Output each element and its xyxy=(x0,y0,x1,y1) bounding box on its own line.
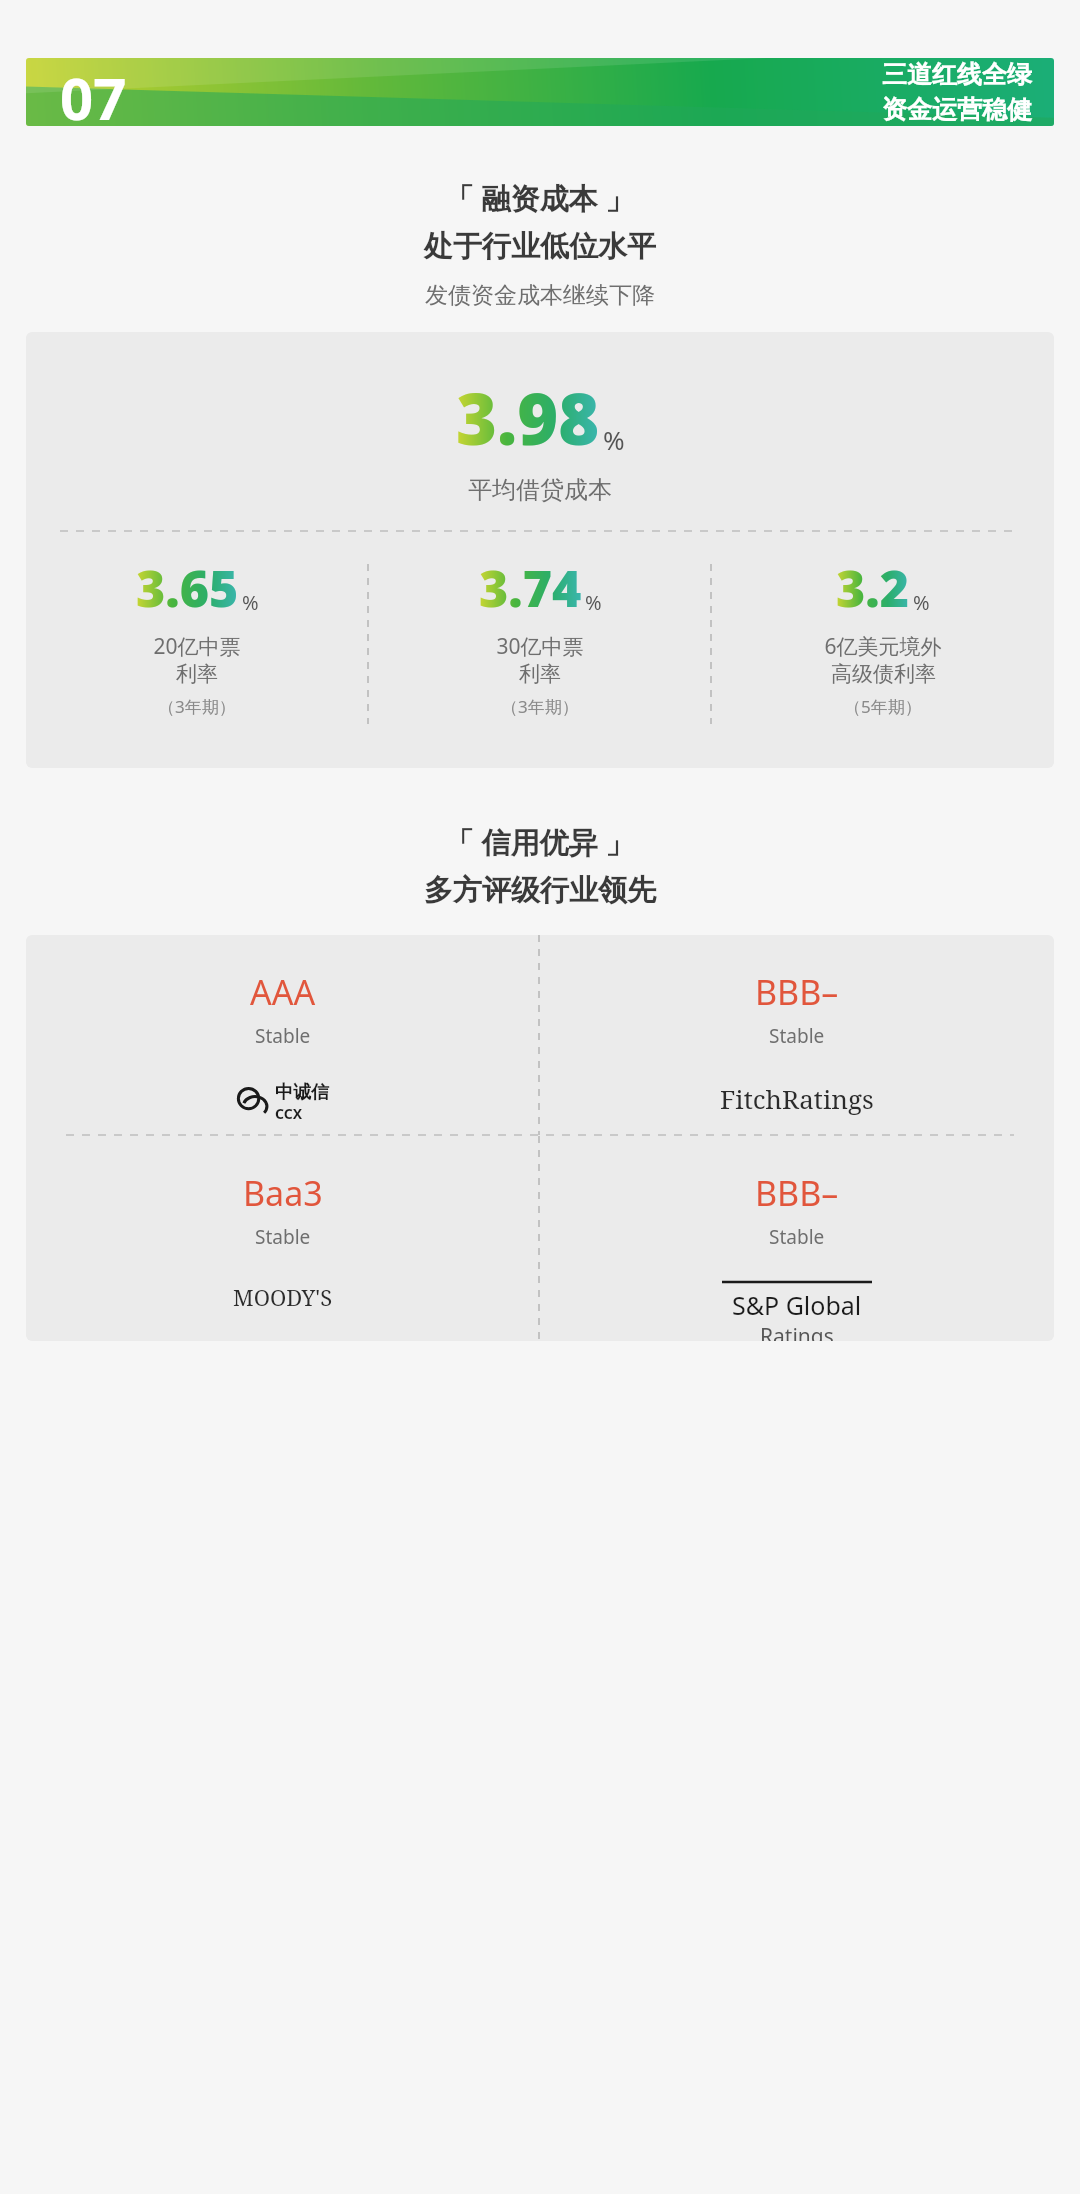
staticText: 3.65 xyxy=(136,554,239,622)
staticText: 平均借贷成本 xyxy=(468,475,612,505)
staticText: Baa3 xyxy=(243,1170,323,1216)
staticText: Stable xyxy=(255,1023,311,1049)
staticText: （3年期） xyxy=(158,695,236,718)
staticText: 利率 xyxy=(176,661,218,687)
staticText: 三道红线全绿 xyxy=(882,59,1032,90)
staticText: 6亿美元境外 xyxy=(824,632,942,661)
staticText: Ratings xyxy=(760,1322,834,1341)
staticText: （3年期） xyxy=(501,695,579,718)
staticText: 发债资金成本继续下降 xyxy=(0,281,1080,310)
staticText: BBB– xyxy=(755,1170,839,1216)
button[interactable]: AAA xyxy=(26,935,1054,1341)
staticText: % xyxy=(585,589,602,616)
staticText: MOODY'S xyxy=(233,1282,333,1312)
staticText: 30亿中票 xyxy=(496,632,584,661)
staticText: 资金运营稳健 xyxy=(882,94,1032,125)
staticText: 20亿中票 xyxy=(153,632,241,661)
staticText: 3.74 xyxy=(479,554,582,622)
staticText: 利率 xyxy=(519,661,561,687)
staticText: 「 融资成本 」 xyxy=(445,178,635,218)
staticText: CCX xyxy=(275,1104,303,1123)
button[interactable]: BBB– xyxy=(540,935,1054,1116)
staticText: 3.98 xyxy=(456,370,600,465)
staticText: % xyxy=(913,589,930,616)
staticText: 3.2 xyxy=(836,554,910,622)
staticText: 中诚信 xyxy=(275,1081,329,1104)
staticText: S&P Global xyxy=(732,1288,862,1322)
staticText: AAA xyxy=(250,969,316,1015)
staticText: 高级债利率 xyxy=(831,661,936,687)
button[interactable]: AAA xyxy=(26,935,539,1123)
button[interactable]: BBB– xyxy=(540,1136,1054,1341)
staticText: Stable xyxy=(255,1224,311,1250)
staticText: % xyxy=(242,589,259,616)
staticText: Stable xyxy=(769,1224,825,1250)
button[interactable]: Baa3 xyxy=(26,1136,539,1312)
staticText: （5年期） xyxy=(844,695,922,718)
staticText: BBB– xyxy=(755,969,839,1015)
button[interactable]: 3.98 xyxy=(26,332,1054,768)
staticText: 多方评级行业领先 xyxy=(424,872,656,909)
staticText: Stable xyxy=(769,1023,825,1049)
staticText: 07 xyxy=(60,58,127,126)
staticText: % xyxy=(603,422,625,457)
staticText: 「 信用优异 」 xyxy=(445,822,635,862)
staticText: FitchRatings xyxy=(720,1081,874,1116)
staticText: 处于行业低位水平 xyxy=(424,228,656,265)
other: CCX 中诚信 xyxy=(237,1081,329,1123)
